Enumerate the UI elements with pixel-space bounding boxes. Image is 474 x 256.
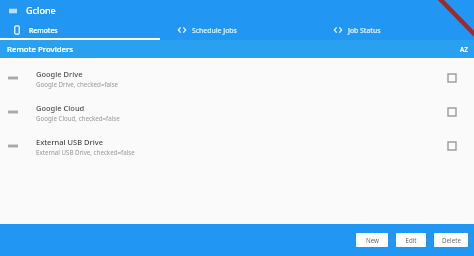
staticText: Edit — [405, 236, 417, 244]
staticText: Schedule Jobs — [192, 26, 237, 35]
button[interactable]: Edit — [396, 233, 426, 247]
staticText: Google Drive — [36, 69, 83, 79]
button[interactable]: Schedule Jobs — [160, 20, 316, 40]
button[interactable]: Delete — [434, 233, 468, 247]
staticText: New — [366, 236, 379, 244]
staticText: Job Status — [348, 26, 381, 35]
button[interactable]: New — [356, 233, 388, 247]
staticText: Remote Providers — [7, 44, 460, 55]
staticText: AZ — [460, 45, 468, 54]
staticText: Google Cloud — [36, 103, 85, 113]
staticText: Google Drive, checked=false — [36, 80, 119, 88]
staticText: Google Cloud, checked=false — [36, 114, 120, 122]
button[interactable]: Select Google Cloud — [448, 108, 456, 116]
button[interactable]: Google Cloud — [0, 95, 474, 129]
button[interactable]: Select Google Drive — [448, 74, 456, 82]
staticText: Delete — [442, 236, 461, 244]
staticText: Remotes — [29, 26, 58, 35]
button[interactable]: Select External USB Drive — [448, 142, 456, 150]
staticText: External USB Drive, checked=false — [36, 148, 135, 156]
button[interactable]: Google Drive — [0, 61, 474, 95]
button[interactable]: Open navigation drawer — [8, 6, 17, 15]
button[interactable]: External USB Drive — [0, 129, 474, 163]
button[interactable]: Sort alphabetically — [460, 45, 468, 54]
button[interactable]: Job Status — [316, 20, 474, 40]
staticText: External USB Drive — [36, 137, 104, 147]
staticText: Gclone — [26, 4, 56, 16]
button[interactable]: Remotes — [0, 20, 160, 40]
